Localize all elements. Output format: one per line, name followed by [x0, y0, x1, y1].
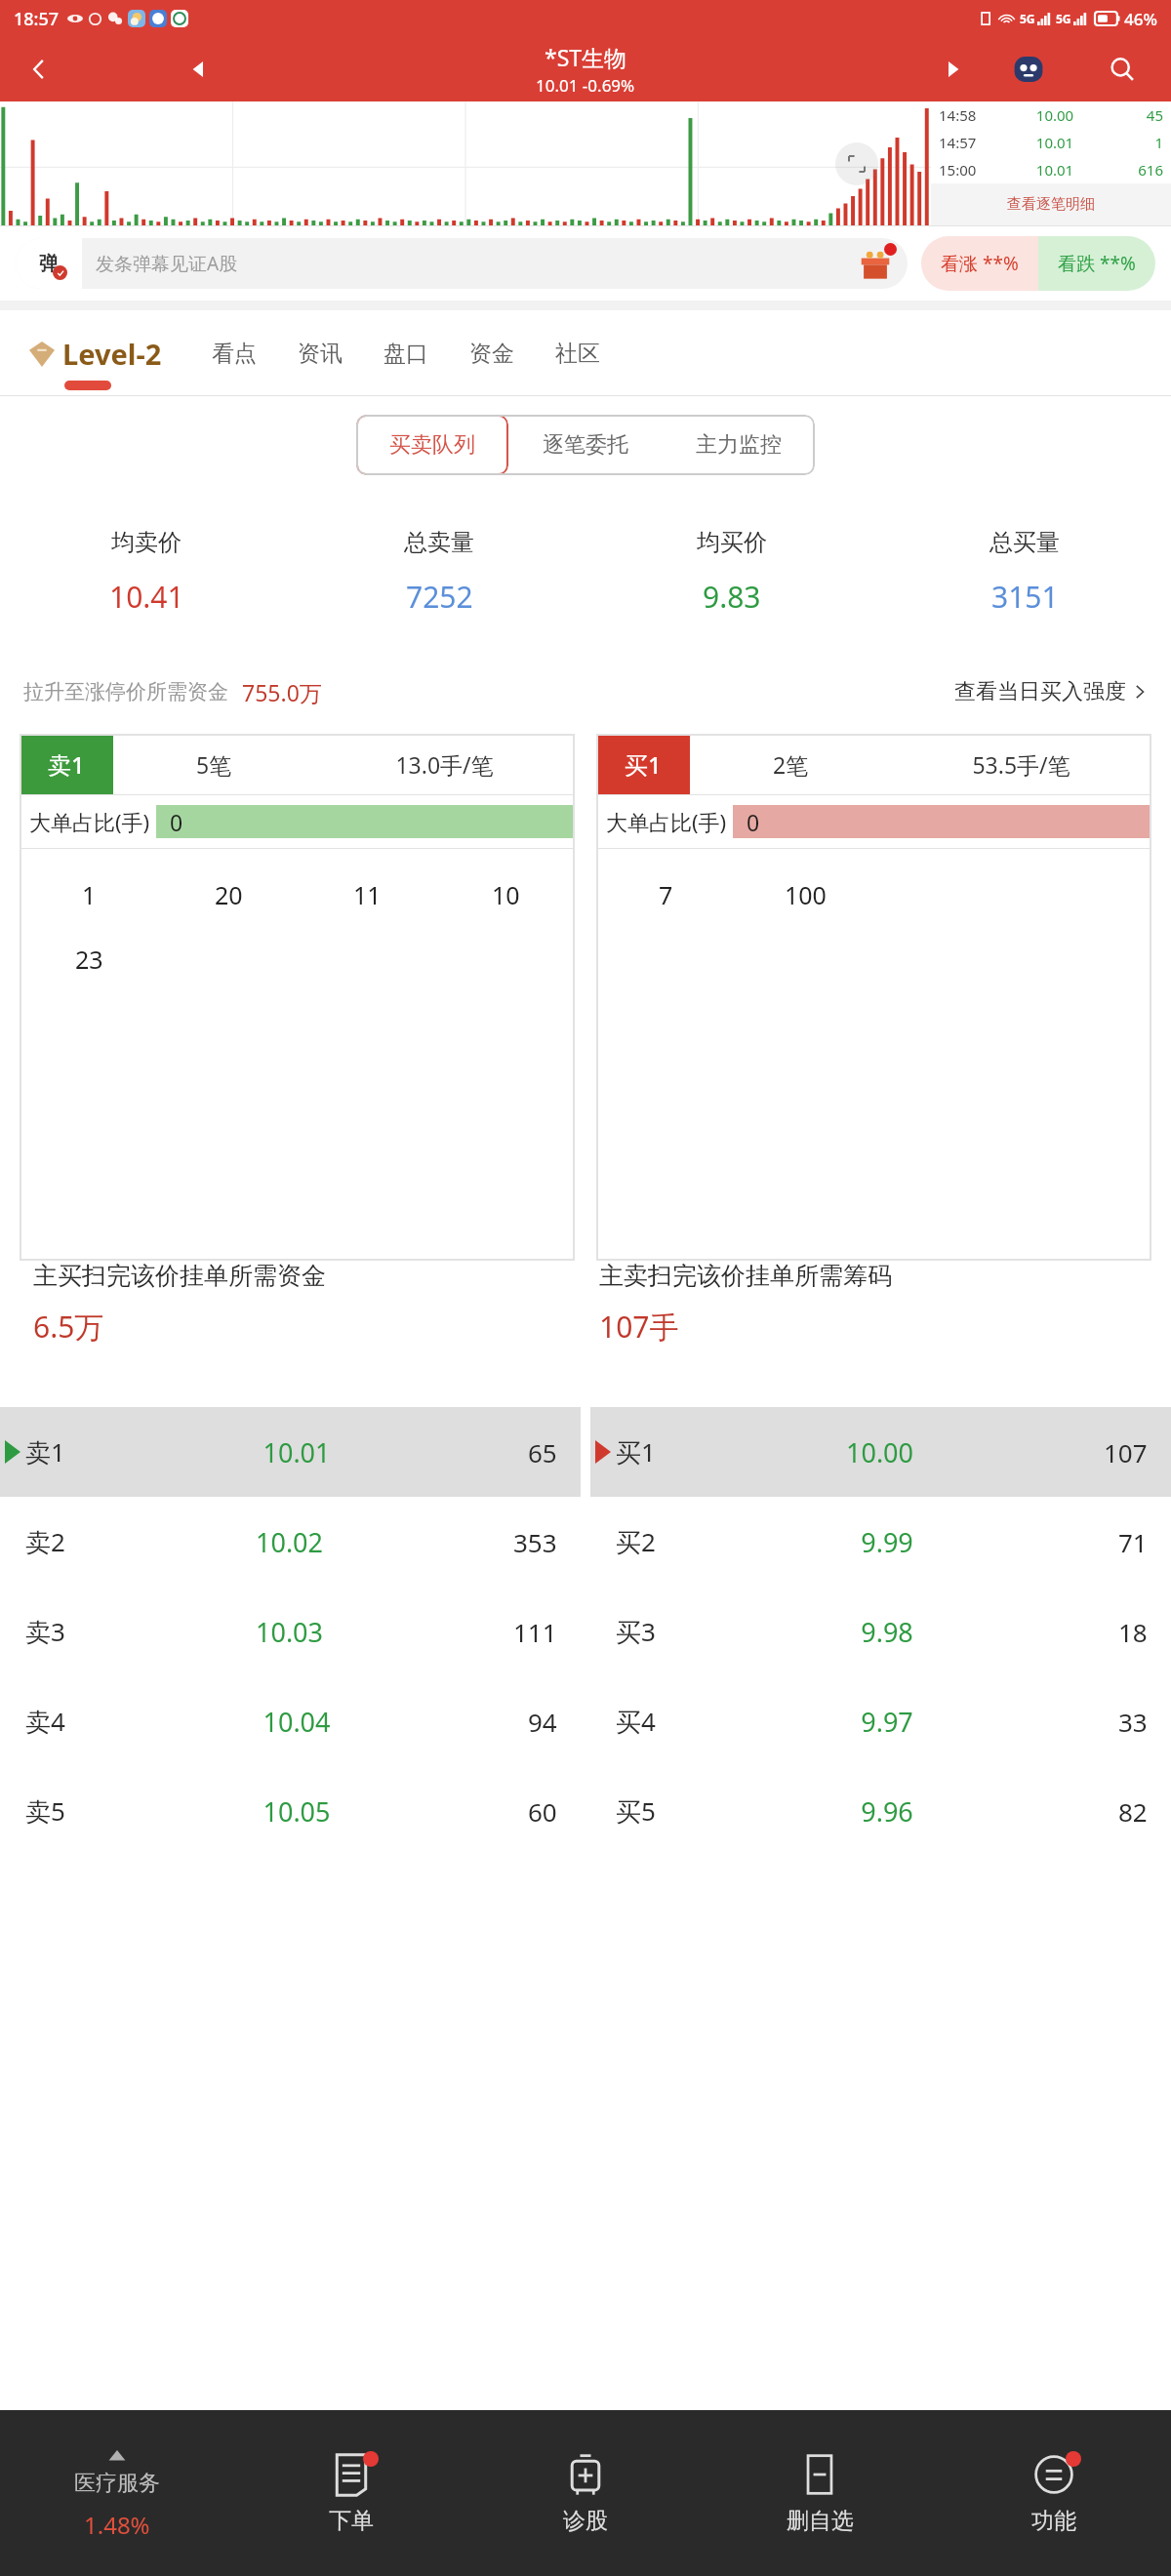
- staticText: 大单占比(手): [29, 807, 150, 836]
- staticText: 医疗服务: [74, 2470, 160, 2497]
- button[interactable]: 看涨 **%: [921, 236, 1038, 291]
- button[interactable]: 买卖队列: [356, 415, 508, 475]
- staticText: 111: [513, 1615, 557, 1649]
- button[interactable]: 买2: [590, 1497, 1171, 1587]
- staticText: 查看逐笔明细: [1007, 195, 1095, 214]
- staticText: 总买量: [989, 528, 1060, 557]
- staticText: 买1: [625, 748, 662, 781]
- staticText: 卖5: [25, 1793, 65, 1829]
- button[interactable]: Back: [14, 44, 64, 95]
- button[interactable]: 买1: [596, 734, 1151, 1261]
- staticText: 107: [1104, 1435, 1148, 1469]
- staticText: 卖1: [25, 1434, 65, 1469]
- staticText: 删自选: [787, 2507, 854, 2535]
- staticText: 6.5万: [33, 1307, 104, 1347]
- staticText: 0: [170, 807, 183, 837]
- staticText: 46%: [1124, 8, 1157, 30]
- button[interactable]: 逐笔委托: [508, 415, 662, 475]
- button[interactable]: 社区: [535, 340, 621, 368]
- staticText: 买2: [616, 1524, 656, 1559]
- staticText: 13.0手/笔: [314, 749, 575, 780]
- button[interactable]: 卖5: [0, 1766, 581, 1856]
- button[interactable]: 买1: [590, 1407, 1171, 1497]
- staticText: 主买扫完该价挂单所需资金: [33, 1261, 326, 1291]
- button[interactable]: Fullscreen: [835, 142, 878, 185]
- button[interactable]: 主力监控: [662, 415, 815, 475]
- staticText: 5G: [1020, 11, 1035, 26]
- staticText: 10.02: [65, 1524, 513, 1560]
- staticText: 买3: [616, 1614, 656, 1649]
- staticText: 10.41: [109, 577, 184, 617]
- staticText: 755.0万: [242, 677, 322, 707]
- staticText: 资讯: [298, 340, 343, 368]
- staticText: 20: [215, 878, 243, 911]
- staticText: 社区: [555, 340, 600, 368]
- staticText: 10.00: [656, 1434, 1104, 1470]
- staticText: 18: [1118, 1615, 1148, 1649]
- staticText: 卖3: [25, 1614, 65, 1649]
- staticText: 23: [75, 943, 103, 976]
- staticText: 1: [82, 878, 97, 911]
- button[interactable]: 资讯: [277, 340, 363, 368]
- button[interactable]: 买4: [590, 1676, 1171, 1766]
- staticText: 14:57: [939, 133, 1001, 152]
- button[interactable]: 卖4: [0, 1676, 581, 1766]
- staticText: 10.01: [1001, 160, 1109, 180]
- button[interactable]: 诊股: [468, 2410, 703, 2576]
- staticText: 3151: [991, 577, 1059, 617]
- button[interactable]: 卖3: [0, 1587, 581, 1676]
- button[interactable]: 下单: [234, 2410, 468, 2576]
- staticText: 100: [785, 878, 827, 911]
- staticText: 107手: [599, 1307, 679, 1347]
- staticText: 主卖扫完该价挂单所需筹码: [599, 1261, 892, 1291]
- button[interactable]: 看跌 **%: [1038, 236, 1155, 291]
- staticText: 下单: [329, 2507, 374, 2535]
- staticText: 总卖量: [404, 528, 474, 557]
- staticText: 10.01: [1001, 133, 1109, 152]
- staticText: 10.01: [65, 1434, 528, 1470]
- staticText: 功能: [1031, 2507, 1076, 2535]
- staticText: 10.00: [1001, 105, 1109, 125]
- button[interactable]: Next stock: [929, 46, 976, 93]
- button[interactable]: 盘口: [363, 340, 449, 368]
- staticText: 买卖队列: [389, 431, 475, 459]
- staticText: Level-2: [62, 335, 162, 373]
- staticText: 7: [659, 878, 673, 911]
- staticText: 查看当日买入强度: [954, 678, 1126, 705]
- button[interactable]: 看点: [191, 340, 277, 368]
- button[interactable]: 功能: [937, 2410, 1171, 2576]
- staticText: 买5: [616, 1793, 656, 1829]
- button[interactable]: 查看逐笔明细: [931, 183, 1171, 225]
- button[interactable]: 查看当日买入强度: [954, 678, 1148, 705]
- button[interactable]: Level-2: [29, 335, 162, 373]
- button[interactable]: 卖1: [0, 1407, 581, 1497]
- staticText: 发条弹幕见证A股: [96, 251, 238, 276]
- staticText: 0: [747, 807, 760, 837]
- button[interactable]: 资金: [449, 340, 535, 368]
- button[interactable]: 卖2: [0, 1497, 581, 1587]
- staticText: 10.03: [65, 1614, 513, 1650]
- button[interactable]: Previous stock: [176, 46, 222, 93]
- staticText: 53.5手/笔: [891, 749, 1151, 780]
- staticText: 10.04: [65, 1704, 528, 1740]
- staticText: 71: [1118, 1525, 1148, 1559]
- button[interactable]: AI assistant: [1003, 44, 1054, 95]
- staticText: 9.83: [703, 577, 761, 617]
- button[interactable]: 医疗服务: [0, 2410, 234, 2576]
- staticText: 看点: [212, 340, 257, 368]
- button[interactable]: 买3: [590, 1587, 1171, 1676]
- staticText: 18:57: [14, 7, 60, 31]
- staticText: 14:58: [939, 105, 1001, 125]
- staticText: 60: [528, 1794, 557, 1829]
- staticText: 大单占比(手): [606, 807, 727, 836]
- staticText: 卖4: [25, 1704, 65, 1739]
- button[interactable]: 卖1: [20, 734, 575, 1261]
- button[interactable]: Search: [1097, 44, 1148, 95]
- staticText: 卖2: [25, 1524, 65, 1559]
- button[interactable]: 删自选: [703, 2410, 937, 2576]
- button[interactable]: 弹: [16, 238, 908, 289]
- staticText: 616: [1109, 160, 1163, 180]
- staticText: 353: [513, 1525, 557, 1559]
- staticText: 7252: [406, 577, 473, 617]
- button[interactable]: 买5: [590, 1766, 1171, 1856]
